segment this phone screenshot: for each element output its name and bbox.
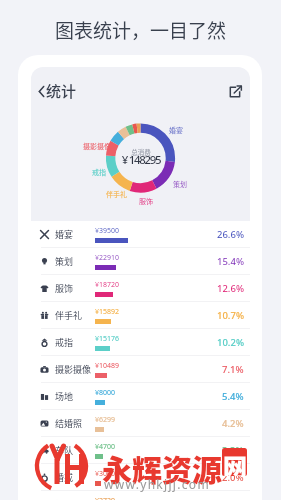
staticText: ¥ 148295 — [111, 152, 171, 168]
button[interactable]: 摄影摄像 — [31, 356, 250, 383]
staticText: 策划 — [55, 255, 74, 268]
staticText: 摄影摄像 — [55, 363, 92, 376]
staticText: 伴手礼 — [55, 309, 83, 322]
staticText: 婚戒 — [55, 471, 74, 484]
button[interactable]: 策划 — [31, 248, 250, 275]
staticText: ¥4700 — [95, 442, 116, 452]
staticText: 15.4% — [217, 255, 244, 268]
staticText: 统计 — [46, 80, 77, 102]
staticText: 图表统计，一目了然 — [0, 16, 281, 44]
button[interactable]: 婚宴 — [31, 221, 250, 248]
button[interactable]: 伴手礼 — [31, 302, 250, 329]
button[interactable]: 服饰 — [31, 275, 250, 302]
staticText: 伴手礼 — [106, 189, 127, 199]
staticText: 车队 — [55, 444, 74, 457]
staticText: ¥2729 — [95, 496, 116, 500]
staticText: 策划 — [173, 179, 187, 189]
staticText: ¥22910 — [95, 253, 120, 263]
staticText: ¥15176 — [95, 334, 120, 344]
staticText: 26.6% — [217, 228, 244, 241]
staticText: 摄影摄像 — [83, 141, 111, 151]
staticText: 5.4% — [222, 390, 244, 403]
button[interactable]: 统计 — [38, 80, 77, 102]
staticText: ¥10489 — [95, 361, 120, 371]
staticText: ¥15892 — [95, 307, 120, 317]
button[interactable]: 烟酒 — [31, 491, 250, 500]
button[interactable]: 车队 — [31, 437, 250, 464]
staticText: 戒指 — [92, 167, 106, 177]
staticText: 3.2% — [222, 444, 244, 457]
button[interactable]: 戒指 — [31, 329, 250, 356]
staticText: 10.2% — [217, 336, 244, 349]
button[interactable]: Share — [224, 80, 246, 102]
staticText: ¥3000 — [95, 469, 116, 479]
staticText: ¥8000 — [95, 388, 116, 398]
staticText: 服饰 — [55, 282, 74, 295]
staticText: 4.2% — [222, 417, 244, 430]
staticText: 服饰 — [139, 196, 153, 206]
staticText: ¥18720 — [95, 280, 120, 290]
button[interactable]: 婚戒 — [31, 464, 250, 491]
staticText: 结婚照 — [55, 417, 83, 430]
staticText: 7.1% — [222, 363, 244, 376]
staticText: ¥39500 — [95, 226, 120, 236]
staticText: 永辉资源 — [102, 446, 222, 489]
staticText: www.yhkjjj.com — [104, 476, 210, 492]
staticText: 婚宴 — [169, 125, 183, 135]
staticText: 戒指 — [55, 336, 74, 349]
button[interactable]: 结婚照 — [31, 410, 250, 437]
staticText: ¥6299 — [95, 415, 116, 425]
staticText: 10.7% — [217, 309, 244, 322]
staticText: 婚宴 — [55, 228, 74, 241]
button[interactable]: 场地 — [31, 383, 250, 410]
staticText: 场地 — [55, 390, 74, 403]
staticText: 网 — [223, 448, 247, 476]
staticText: 总消费 — [111, 147, 171, 156]
staticText: 12.6% — [217, 282, 244, 295]
staticText: 2.0% — [222, 471, 244, 484]
